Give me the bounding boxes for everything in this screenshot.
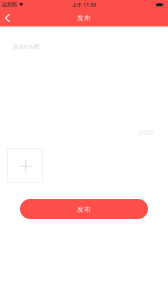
staticText: 上午 11:39: [72, 1, 96, 8]
staticText: 0/200: [139, 129, 153, 136]
staticText: 说点什么吧!: [13, 43, 39, 50]
staticText: 发布: [77, 14, 91, 22]
button[interactable]: Add photo: [7, 148, 42, 182]
staticText: 发布: [77, 205, 91, 214]
staticText: 运营商: [2, 1, 17, 8]
button[interactable]: Back: [0, 9, 15, 26]
button[interactable]: 发布: [20, 199, 148, 219]
